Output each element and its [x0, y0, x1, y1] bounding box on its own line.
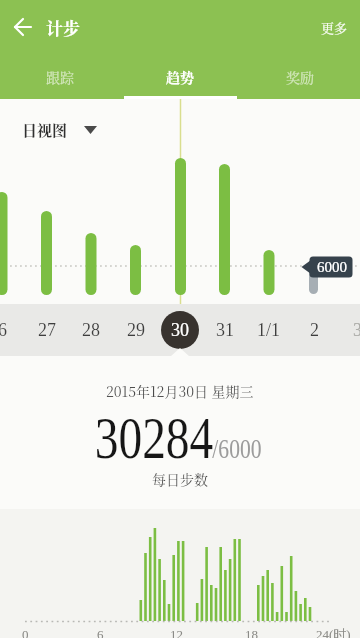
staticText: 6 [97, 627, 104, 638]
staticText: 趋势 [166, 67, 194, 87]
staticText: 2 [310, 320, 319, 340]
staticText: 6000 [317, 259, 347, 276]
staticText: 18 [245, 627, 258, 638]
staticText: /6000 [212, 433, 262, 464]
staticText: 1/1 [257, 320, 281, 340]
staticText: 2015年12月30日 星期三 [106, 381, 254, 401]
staticText: 奖励 [286, 67, 314, 87]
staticText: 29 [127, 320, 145, 340]
staticText: 计步 [46, 15, 80, 39]
staticText: 26 [0, 320, 7, 340]
staticText: 30 [171, 320, 189, 340]
staticText: 27 [38, 320, 56, 340]
staticText: 日视图 [22, 119, 68, 141]
staticText: 跟踪 [46, 67, 74, 87]
staticText: 24(时) [316, 626, 351, 638]
staticText: 12 [170, 627, 183, 638]
staticText: 31 [216, 320, 234, 340]
staticText: 3 [353, 320, 360, 340]
staticText: 28 [82, 320, 100, 340]
staticText: 0 [22, 627, 29, 638]
staticText: 更多 [321, 18, 348, 37]
staticText: 30284 [95, 405, 213, 471]
staticText: 每日步数 [152, 469, 208, 489]
